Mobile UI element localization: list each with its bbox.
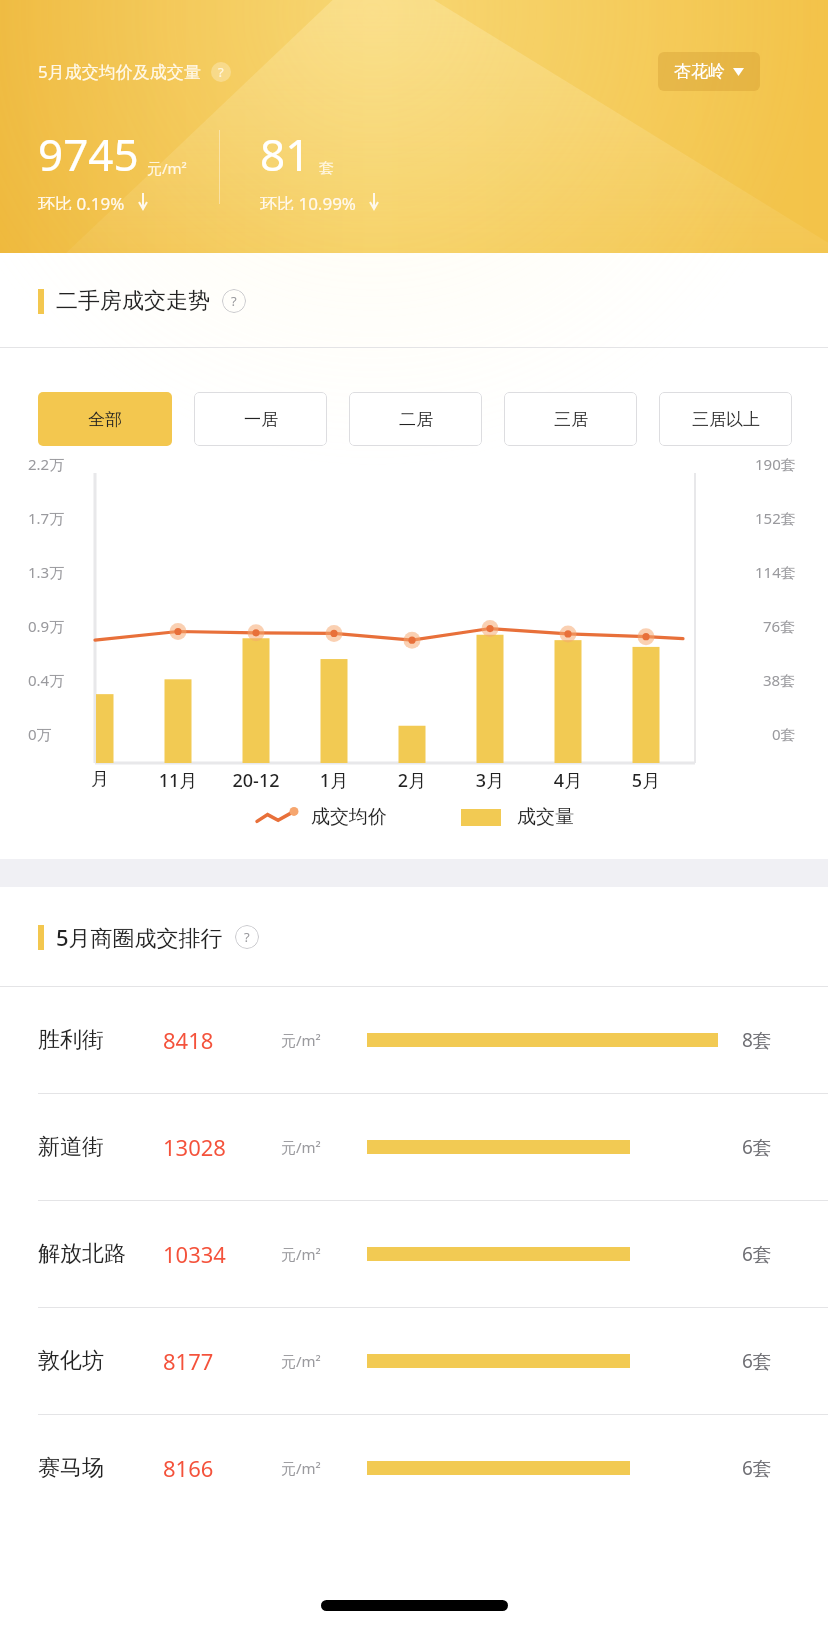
staticText: 0.9万 — [28, 616, 65, 636]
staticText: 元/m² — [281, 1137, 321, 1157]
staticText: 三居以上 — [692, 409, 760, 430]
staticText: 新道街 — [38, 1133, 104, 1161]
button[interactable]: 说明 — [235, 925, 259, 949]
staticText: 81 — [260, 124, 311, 184]
staticText: 0套 — [772, 724, 796, 744]
staticText: 1.7万 — [28, 508, 65, 528]
staticText: 套 — [319, 159, 334, 178]
staticText: 成交量 — [517, 805, 574, 829]
staticText: ? — [244, 928, 250, 946]
staticText: 2.2万 — [28, 454, 65, 474]
staticText: 二居 — [399, 409, 433, 430]
staticText: 6套 — [742, 1455, 772, 1481]
staticText: 全部 — [88, 409, 122, 430]
button[interactable]: 全部 — [38, 392, 172, 446]
staticText: 190套 — [755, 454, 796, 474]
staticText: ? — [218, 63, 224, 81]
staticText: 20-12 月 — [220, 768, 292, 791]
button[interactable]: 一居 — [194, 392, 327, 446]
staticText: 3月 — [454, 768, 526, 791]
staticText: 元/m² — [281, 1458, 321, 1478]
staticText: 1月 — [298, 768, 370, 791]
staticText: 8套 — [742, 1027, 772, 1053]
button[interactable]: 解放北路 — [0, 1201, 828, 1307]
staticText: 元/m² — [281, 1244, 321, 1264]
staticText: 月 — [64, 768, 136, 791]
staticText: 杏花岭 — [674, 61, 725, 82]
staticText: 胜利街 — [38, 1026, 104, 1054]
button[interactable]: 三居以上 — [659, 392, 792, 446]
staticText: 6套 — [742, 1348, 772, 1374]
staticText: 元/m² — [281, 1030, 321, 1050]
button[interactable]: 二居 — [349, 392, 482, 446]
staticText: 元/m² — [147, 158, 187, 178]
staticText: 11月 — [142, 768, 214, 791]
button[interactable]: 赛马场 — [0, 1415, 828, 1521]
staticText: 8166 — [163, 1453, 214, 1483]
staticText: 76套 — [763, 616, 796, 636]
staticText: 38套 — [763, 670, 796, 690]
button[interactable]: 三居 — [504, 392, 637, 446]
staticText: 元/m² — [281, 1351, 321, 1371]
staticText: 三居 — [554, 409, 588, 430]
staticText: 解放北路 — [38, 1240, 126, 1268]
staticText: 赛马场 — [38, 1454, 104, 1482]
button[interactable]: 杏花岭 — [658, 52, 760, 91]
staticText: 2月 — [376, 768, 448, 791]
staticText: 5月成交均价及成交量 — [38, 60, 201, 83]
staticText: 0万 — [28, 724, 52, 744]
staticText: 9745 — [38, 124, 139, 184]
button[interactable]: 胜利街 — [0, 987, 828, 1093]
staticText: 13028 — [163, 1132, 226, 1162]
staticText: 5月 — [610, 768, 682, 791]
button[interactable]: 敦化坊 — [0, 1308, 828, 1414]
staticText: 环比 10.99% — [260, 192, 356, 210]
staticText: 环比 0.19% — [38, 192, 125, 210]
button[interactable]: 说明 — [211, 62, 231, 82]
staticText: 一居 — [244, 409, 278, 430]
staticText: 10334 — [163, 1239, 226, 1269]
staticText: 1.3万 — [28, 562, 65, 582]
staticText: 114套 — [755, 562, 796, 582]
staticText: 152套 — [755, 508, 796, 528]
staticText: 0.4万 — [28, 670, 65, 690]
staticText: 6套 — [742, 1134, 772, 1160]
staticText: 二手房成交走势 — [56, 287, 210, 315]
staticText: ? — [231, 292, 237, 310]
staticText: 8418 — [163, 1025, 214, 1055]
staticText: 5月商圈成交排行 — [56, 922, 223, 952]
staticText: 4月 — [532, 768, 604, 791]
staticText: 成交均价 — [311, 805, 387, 829]
button[interactable]: 新道街 — [0, 1094, 828, 1200]
staticText: 敦化坊 — [38, 1347, 104, 1375]
button[interactable]: 说明 — [222, 289, 246, 313]
staticText: 8177 — [163, 1346, 214, 1376]
staticText: 6套 — [742, 1241, 772, 1267]
